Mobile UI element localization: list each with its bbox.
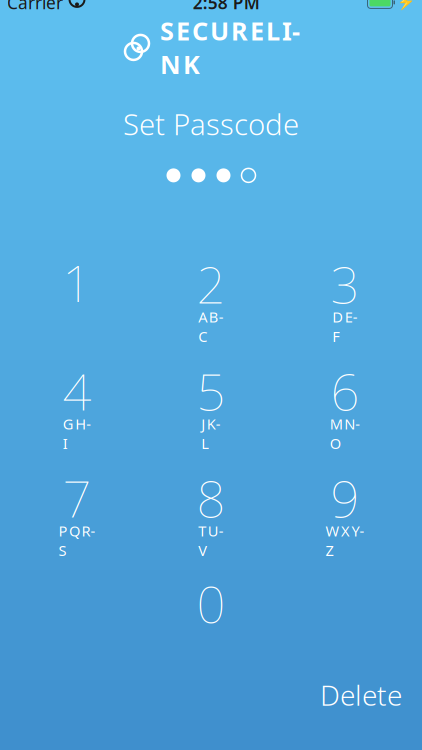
staticText: 5 — [196, 357, 225, 424]
staticText: 0 — [196, 570, 225, 637]
button[interactable]: 9 — [278, 459, 412, 551]
staticText: 1 — [62, 249, 91, 316]
staticText: 2 — [196, 250, 225, 317]
staticText: WXYZ — [325, 521, 365, 560]
button[interactable]: 4 — [10, 352, 144, 444]
staticText: 3 — [330, 250, 359, 317]
staticText: ABC — [198, 307, 224, 346]
staticText: 4 — [62, 357, 91, 424]
button[interactable]: 8 — [144, 459, 278, 551]
button[interactable]: 0 — [144, 566, 278, 658]
staticText: Carrier — [7, 0, 63, 14]
staticText: JKL — [201, 414, 221, 453]
button[interactable]: 7 — [10, 459, 144, 551]
staticText: GHI — [63, 414, 91, 453]
button[interactable]: 2 — [144, 245, 278, 337]
staticText: Set Passcode — [123, 104, 299, 143]
button[interactable]: 5 — [144, 352, 278, 444]
staticText: 7 — [62, 464, 91, 531]
button[interactable]: Delete — [306, 666, 416, 724]
staticText: Delete — [320, 676, 402, 714]
button[interactable]: 6 — [278, 352, 412, 444]
staticText: 2:58 PM — [193, 0, 260, 14]
staticText: MNO — [330, 414, 360, 453]
staticText: TUV — [198, 521, 224, 560]
staticText: DEF — [332, 307, 358, 346]
button[interactable]: 3 — [278, 245, 412, 337]
staticText: SECURELINK — [160, 14, 300, 81]
staticText: ⚡ — [397, 0, 415, 11]
staticText: 9 — [330, 464, 359, 531]
button[interactable]: 1 — [10, 245, 144, 337]
staticText: PQRS — [58, 521, 96, 560]
staticText: 6 — [330, 357, 359, 424]
staticText: 8 — [196, 464, 225, 531]
